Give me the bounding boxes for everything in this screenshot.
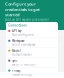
staticText: API key — [12, 29, 21, 33]
staticText: Connections — [8, 24, 26, 27]
button[interactable]: Privacy — [6, 68, 58, 77]
staticText: Select a workspace — [12, 43, 36, 46]
staticText: Every 15 minutes — [12, 63, 35, 66]
staticText: Configure your credentials to get starte… — [5, 1, 40, 17]
button[interactable]: Model — [6, 48, 58, 58]
staticText: Model — [12, 49, 21, 53]
button[interactable]: Sync — [6, 58, 58, 67]
staticText: Default model — [12, 53, 32, 56]
staticText: Sync — [12, 59, 17, 62]
staticText: Workspace — [12, 39, 25, 43]
staticText: Privacy — [12, 69, 20, 72]
button[interactable]: API key — [6, 28, 58, 38]
staticText: Review settings — [12, 73, 32, 76]
button[interactable]: Workspace — [6, 38, 58, 48]
staticText: Add an API key and pick a model to begin… — [5, 18, 49, 25]
staticText: Not configured — [12, 33, 34, 37]
